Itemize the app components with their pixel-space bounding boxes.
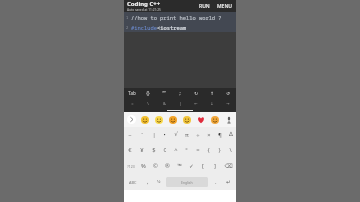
button[interactable]: ¶ bbox=[214, 127, 225, 142]
staticText: } bbox=[218, 146, 221, 154]
button[interactable]: Comma bbox=[142, 174, 153, 190]
button[interactable]: Emoji bbox=[180, 112, 194, 127]
button[interactable]: = bbox=[124, 98, 140, 109]
staticText: Tab bbox=[128, 90, 136, 96]
button[interactable]: Emoji bbox=[166, 112, 180, 127]
button[interactable]: 2 bbox=[124, 22, 236, 32]
button[interactable]: % bbox=[138, 158, 149, 174]
button[interactable]: • bbox=[159, 127, 170, 142]
button[interactable]: 1 bbox=[124, 12, 236, 22]
staticText: % bbox=[141, 162, 146, 170]
button[interactable]: ; bbox=[172, 88, 188, 98]
staticText: ] bbox=[214, 162, 216, 170]
button[interactable]: Heart emoji bbox=[194, 112, 208, 127]
button[interactable]: MENU bbox=[216, 2, 233, 11]
button[interactable]: = bbox=[192, 142, 203, 158]
staticText: MENU bbox=[217, 3, 232, 10]
staticText: {} bbox=[146, 90, 150, 96]
button[interactable]: ¢ bbox=[159, 142, 170, 158]
staticText: RUN bbox=[199, 3, 210, 10]
button[interactable]: √ bbox=[170, 127, 181, 142]
button[interactable]: Enter bbox=[221, 174, 236, 190]
button[interactable]: ABC bbox=[124, 174, 142, 190]
staticText: English bbox=[181, 180, 193, 185]
staticText: √ bbox=[174, 131, 178, 138]
staticText: . bbox=[215, 178, 217, 186]
button[interactable]: ∆ bbox=[225, 127, 236, 142]
button[interactable]: → bbox=[220, 98, 236, 109]
staticText: | bbox=[179, 101, 182, 106]
button[interactable]: ^ bbox=[170, 142, 181, 158]
staticText: € bbox=[128, 146, 132, 154]
button[interactable]: ← bbox=[188, 98, 204, 109]
button[interactable]: Expand emoji toolbar bbox=[124, 112, 138, 127]
button[interactable]: × bbox=[203, 127, 214, 142]
staticText: ° bbox=[185, 146, 188, 154]
button[interactable]: ↑ bbox=[204, 88, 220, 98]
staticText: → bbox=[226, 101, 230, 106]
button[interactable]: ⌫ bbox=[221, 158, 236, 174]
button[interactable]: & bbox=[156, 98, 172, 109]
button[interactable]: ° bbox=[181, 142, 192, 158]
button[interactable]: [ bbox=[197, 158, 209, 174]
button[interactable]: Emoji bbox=[208, 112, 222, 127]
button[interactable]: ↻ bbox=[188, 88, 204, 98]
button[interactable]: ] bbox=[209, 158, 221, 174]
button[interactable]: Tab bbox=[124, 88, 140, 98]
staticText: ↺ bbox=[226, 91, 230, 96]
staticText: ABC bbox=[129, 180, 137, 185]
button[interactable]: | bbox=[172, 98, 188, 109]
button[interactable]: Period bbox=[210, 174, 221, 190]
button[interactable]: € bbox=[124, 142, 136, 158]
button[interactable]: English bbox=[166, 177, 208, 187]
button[interactable]: Voice input bbox=[222, 112, 236, 127]
button[interactable]: ÷ bbox=[192, 127, 203, 142]
staticText: | bbox=[152, 131, 156, 139]
button[interactable]: ✓ bbox=[185, 158, 197, 174]
staticText: ?123 bbox=[127, 164, 135, 169]
button[interactable]: ™ bbox=[173, 158, 185, 174]
button[interactable]: | bbox=[148, 127, 159, 142]
staticText: ← bbox=[194, 101, 198, 106]
staticText: ® bbox=[165, 162, 170, 170]
button[interactable]: ~ bbox=[124, 127, 136, 142]
staticText: π bbox=[185, 131, 189, 139]
staticText: © bbox=[153, 162, 158, 170]
staticText: ^ bbox=[174, 146, 178, 154]
staticText: 2 bbox=[126, 25, 129, 30]
staticText: ↓ bbox=[210, 101, 214, 106]
button[interactable]: ` bbox=[136, 127, 148, 142]
staticText: { bbox=[207, 146, 210, 154]
button[interactable]: © bbox=[149, 158, 161, 174]
staticText: “” bbox=[162, 90, 166, 96]
staticText: ¥ bbox=[140, 146, 144, 154]
button[interactable]: π bbox=[181, 127, 192, 142]
staticText: ∆ bbox=[229, 131, 233, 138]
button[interactable]: RUN bbox=[198, 2, 211, 11]
staticText: & bbox=[163, 101, 166, 106]
button[interactable]: ↺ bbox=[220, 88, 236, 98]
button[interactable]: } bbox=[214, 142, 225, 158]
button[interactable]: ® bbox=[161, 158, 173, 174]
button[interactable]: ?123 bbox=[124, 158, 138, 174]
staticText: ↻ bbox=[194, 91, 198, 96]
button[interactable]: Fraction bbox=[153, 174, 164, 190]
button[interactable]: \ bbox=[225, 142, 236, 158]
staticText: ↵ bbox=[226, 179, 231, 186]
button[interactable]: {} bbox=[140, 88, 156, 98]
staticText: ⌫ bbox=[224, 163, 233, 170]
button[interactable]: Emoji bbox=[152, 112, 166, 127]
button[interactable]: ↓ bbox=[204, 98, 220, 109]
staticText: 1⁄2 bbox=[157, 179, 161, 185]
staticText: Auto saved at 11:21:25 bbox=[127, 8, 161, 12]
staticText: = bbox=[131, 101, 134, 106]
button[interactable]: { bbox=[203, 142, 214, 158]
staticText: ~ bbox=[128, 131, 132, 139]
button[interactable]: “” bbox=[156, 88, 172, 98]
button[interactable]: Emoji bbox=[138, 112, 152, 127]
button[interactable]: ¥ bbox=[136, 142, 148, 158]
button[interactable]: \ bbox=[140, 98, 156, 109]
staticText: = bbox=[196, 146, 200, 154]
staticText: ¶ bbox=[218, 131, 222, 139]
button[interactable]: $ bbox=[148, 142, 159, 158]
